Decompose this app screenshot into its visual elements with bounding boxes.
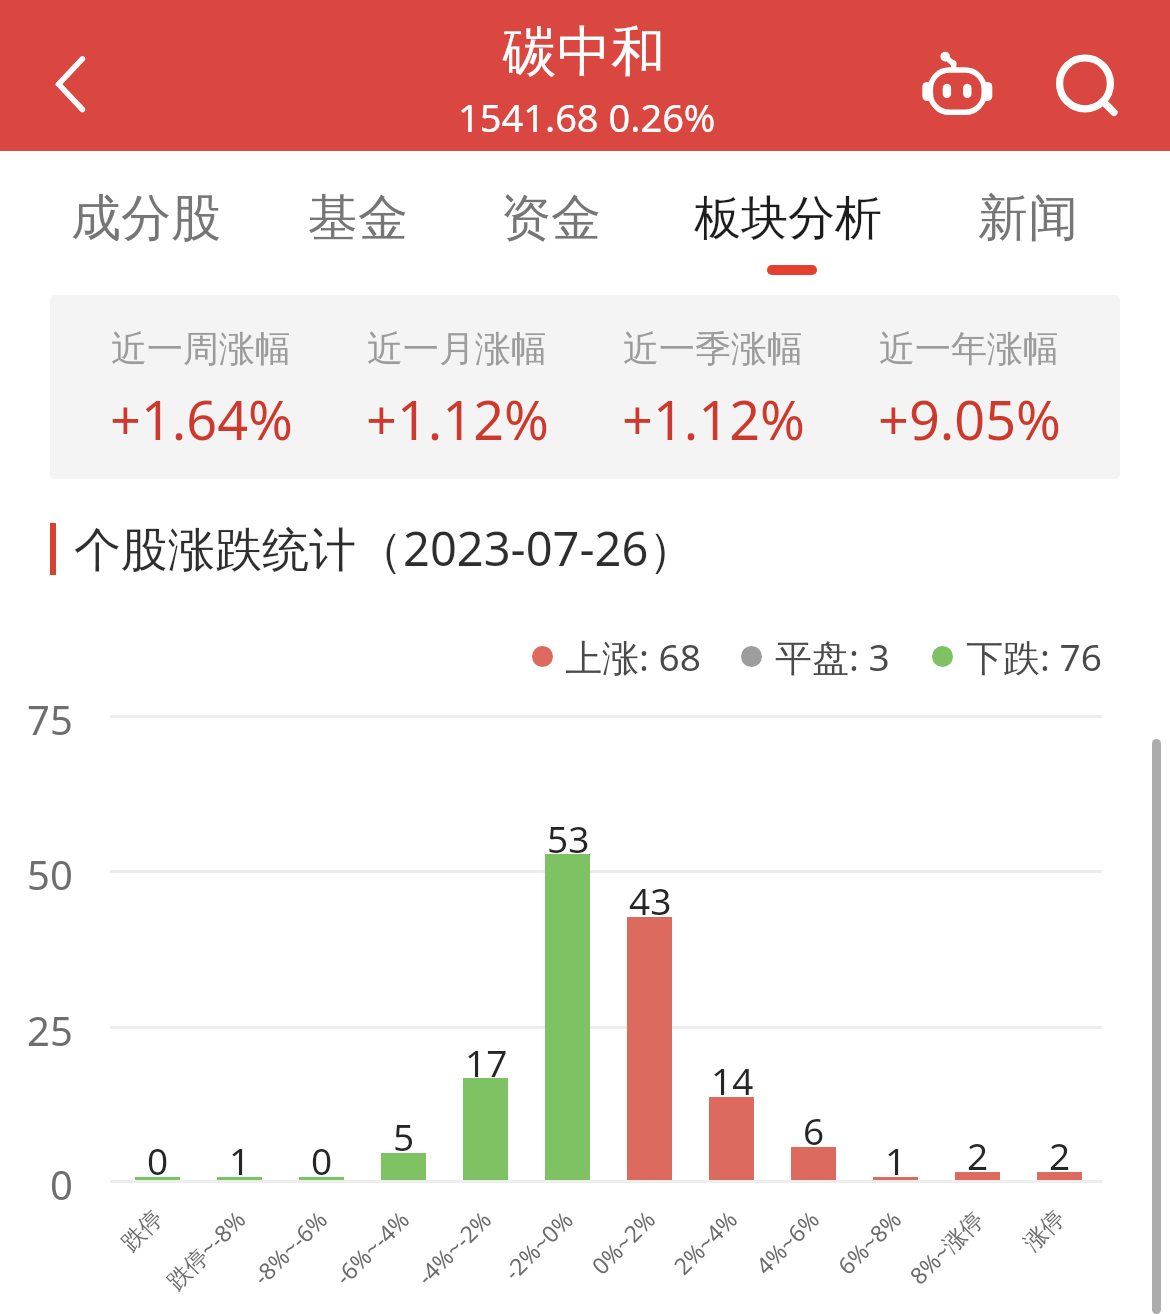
staticText: 6%~8% [830, 1203, 907, 1280]
staticText: 4%~6% [748, 1203, 825, 1280]
staticText: 50 [27, 847, 73, 901]
staticText: 近一周涨幅 [111, 326, 291, 371]
staticText: 1 [885, 1135, 907, 1185]
button[interactable]: 新闻 [971, 168, 1085, 268]
staticText: 下跌: 76 [966, 631, 1102, 682]
button[interactable] [317, 295, 597, 479]
staticText: +1.64% [110, 382, 293, 456]
staticText: 平盘: 3 [775, 631, 890, 682]
button[interactable]: 成分股 [66, 168, 226, 268]
staticText: 跌停~-8% [159, 1203, 251, 1295]
staticText: 8%~涨停 [902, 1203, 989, 1290]
button[interactable]: 资金 [494, 168, 608, 268]
staticText: 6 [803, 1105, 825, 1155]
staticText: 14 [711, 1055, 754, 1105]
staticText: 近一季涨幅 [623, 326, 803, 371]
button[interactable] [573, 295, 853, 479]
staticText: -6%~-4% [328, 1203, 415, 1291]
staticText: 上涨: 68 [565, 631, 701, 682]
staticText: 17 [465, 1037, 508, 1087]
staticText: 2 [1049, 1130, 1071, 1180]
button[interactable]: AI assistant [905, 30, 1015, 136]
button[interactable]: Search [1030, 30, 1140, 136]
staticText: 2%~4% [666, 1203, 743, 1280]
staticText: 43 [629, 875, 672, 925]
staticText: 板块分析 [694, 189, 882, 248]
button[interactable] [829, 295, 1109, 479]
staticText: 0 [147, 1135, 169, 1185]
staticText: 1541.68 0.26% [458, 91, 716, 143]
staticText: 碳中和 [503, 18, 665, 86]
staticText: 跌停 [116, 1204, 169, 1257]
staticText: 53 [547, 813, 590, 863]
staticText: 基金 [308, 187, 408, 250]
staticText: 个股涨跌统计（2023-07-26） [74, 516, 696, 580]
staticText: +1.12% [366, 382, 549, 456]
staticText: 成分股 [71, 187, 221, 250]
button[interactable] [61, 295, 341, 479]
staticText: 近一月涨幅 [367, 326, 547, 371]
button[interactable] [734, 626, 934, 686]
button[interactable]: Back [14, 29, 124, 139]
staticText: 1 [229, 1135, 251, 1185]
button[interactable]: 基金 [303, 168, 413, 268]
staticText: -4%~-2% [410, 1203, 497, 1291]
staticText: 0 [311, 1135, 333, 1185]
staticText: -2%~0% [497, 1203, 579, 1286]
staticText: 资金 [501, 187, 601, 250]
staticText: 5 [393, 1111, 415, 1161]
button[interactable] [925, 626, 1125, 686]
staticText: 近一年涨幅 [879, 326, 1059, 371]
staticText: 0 [50, 1157, 73, 1211]
staticText: +9.05% [878, 382, 1061, 456]
staticText: 2 [967, 1130, 989, 1180]
staticText: +1.12% [622, 382, 805, 456]
button[interactable] [524, 626, 724, 686]
staticText: 75 [27, 692, 73, 746]
staticText: 涨停 [1018, 1204, 1071, 1257]
staticText: 0%~2% [584, 1203, 661, 1280]
staticText: -8%~-6% [246, 1203, 333, 1291]
staticText: 25 [27, 1003, 73, 1057]
button[interactable]: 板块分析 [678, 168, 898, 268]
staticText: 新闻 [978, 187, 1078, 250]
